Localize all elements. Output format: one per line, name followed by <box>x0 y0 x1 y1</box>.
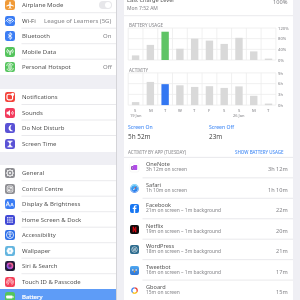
staticText: 0h <box>278 103 283 109</box>
staticText: Battery <box>22 293 43 300</box>
staticText: 0% <box>278 58 284 64</box>
button[interactable]: Accessibility <box>0 227 116 243</box>
staticText: 17m <box>276 268 288 276</box>
staticText: 20m <box>276 227 288 235</box>
staticText: ACTIVITY <box>129 67 148 73</box>
staticText: F <box>208 108 211 114</box>
button[interactable]: Screen Time <box>0 136 116 152</box>
button[interactable]: WordPress <box>124 239 293 259</box>
staticText: 21m <box>276 247 288 255</box>
staticText: Wallpaper <box>22 247 51 255</box>
staticText: Airplane Mode <box>22 1 64 9</box>
button[interactable]: Do Not Disturb <box>0 120 116 136</box>
button[interactable]: Touch ID & Passcode <box>0 274 116 290</box>
staticText: Accessibility <box>22 231 56 239</box>
staticText: 9h <box>278 71 283 77</box>
staticText: 21m on screen – 1m background <box>146 207 222 214</box>
staticText: Control Centre <box>22 185 64 193</box>
staticText: S <box>223 108 226 114</box>
button[interactable]: Gboard <box>124 280 293 300</box>
staticText: T <box>164 108 167 114</box>
button[interactable]: Mobile Data <box>0 44 116 60</box>
staticText: Mon 7:52 AM <box>127 5 158 12</box>
staticText: 5h 52m <box>128 132 151 141</box>
staticText: S <box>238 108 241 114</box>
staticText: 1h 10m on screen <box>146 187 187 194</box>
staticText: 6h <box>278 81 283 87</box>
staticText: Facebook <box>146 201 172 209</box>
staticText: 19m on screen – 1m background <box>146 228 222 235</box>
staticText: Home Screen & Dock <box>22 216 82 224</box>
button[interactable]: Airplane Mode <box>0 0 116 13</box>
staticText: On <box>103 32 112 40</box>
staticText: Mobile Data <box>22 48 57 56</box>
staticText: Off <box>103 63 112 71</box>
button[interactable]: General <box>0 165 116 181</box>
staticText: M <box>149 108 153 114</box>
button[interactable]: Facebook <box>124 198 293 218</box>
button[interactable]: OneNote <box>124 157 293 177</box>
staticText: Touch ID & Passcode <box>22 278 81 286</box>
staticText: 3h <box>278 92 283 98</box>
staticText: 80% <box>278 36 287 42</box>
staticText: Netflix <box>146 222 164 230</box>
staticText: Personal Hotspot <box>22 63 71 71</box>
button[interactable]: Netflix <box>124 219 293 239</box>
button[interactable]: Control Centre <box>0 181 116 197</box>
staticText: Screen Time <box>22 140 57 148</box>
staticText: OneNote <box>146 160 170 168</box>
staticText: 26 Jan <box>233 113 245 118</box>
staticText: T <box>267 108 270 114</box>
staticText: ACTIVITY BY APP (TUESDAY) <box>128 149 187 155</box>
staticText: 18m on screen – 3m background <box>146 248 222 255</box>
staticText: WordPress <box>146 242 175 250</box>
staticText: Safari <box>146 181 162 189</box>
staticText: Display & Brightness <box>22 200 81 208</box>
staticText: BATTERY USAGE <box>129 22 163 28</box>
staticText: 100% <box>273 0 288 6</box>
staticText: General <box>22 169 45 177</box>
staticText: SHOW BATTERY USAGE <box>235 149 284 155</box>
staticText: Siri & Search <box>22 262 58 270</box>
staticText: S <box>134 108 137 114</box>
button[interactable]: Wallpaper <box>0 243 116 259</box>
button[interactable]: Siri & Search <box>0 258 116 274</box>
button[interactable]: Wi-Fi <box>0 13 116 29</box>
staticText: 15m on screen <box>146 289 180 296</box>
staticText: Sounds <box>22 109 43 117</box>
staticText: M <box>252 108 256 114</box>
button[interactable]: Display & Brightness <box>0 196 116 212</box>
staticText: 16m on screen – 1m background <box>146 269 222 276</box>
staticText: 15m <box>276 288 288 296</box>
staticText: 120% <box>278 26 289 32</box>
staticText: 23m <box>209 132 223 141</box>
button[interactable]: Notifications <box>0 89 116 105</box>
staticText: Last Charge Level <box>127 0 174 4</box>
staticText: Wi-Fi <box>22 17 36 25</box>
staticText: Bluetooth <box>22 32 50 40</box>
staticText: Screen Off <box>209 124 234 131</box>
staticText: Tweetbot <box>146 263 171 271</box>
staticText: 19 Jan <box>130 113 142 118</box>
staticText: League of Learners (5G) <box>44 17 112 25</box>
staticText: T <box>193 108 196 114</box>
button[interactable]: Safari <box>124 178 293 198</box>
staticText: 3h 12m <box>268 165 288 173</box>
button[interactable]: Bluetooth <box>0 28 116 44</box>
button[interactable]: Sounds <box>0 105 116 121</box>
button[interactable]: Personal Hotspot <box>0 59 116 75</box>
staticText: W <box>178 108 182 114</box>
staticText: Screen On <box>128 124 153 131</box>
staticText: 40% <box>278 47 287 53</box>
staticText: Notifications <box>22 93 58 101</box>
staticText: Gboard <box>146 283 166 291</box>
staticText: Do Not Disturb <box>22 124 65 132</box>
button[interactable]: SHOW BATTERY USAGE <box>235 149 284 155</box>
button[interactable]: Battery <box>0 289 116 300</box>
staticText: 3h 12m on screen <box>146 166 187 173</box>
staticText: 22m <box>276 206 288 214</box>
button[interactable]: Tweetbot <box>124 260 293 280</box>
button[interactable]: Home Screen & Dock <box>0 212 116 228</box>
staticText: 1h 10m <box>268 186 288 194</box>
